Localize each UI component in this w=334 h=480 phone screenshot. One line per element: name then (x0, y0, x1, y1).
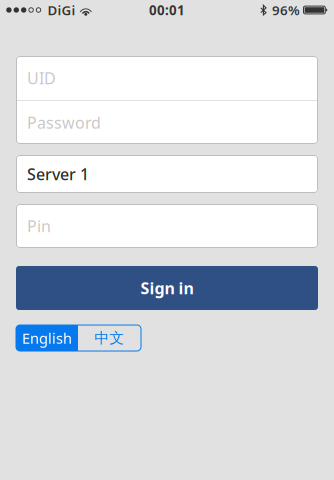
staticText: 96% (272, 1, 300, 19)
button[interactable]: Password (16, 101, 318, 144)
staticText: Password (27, 112, 101, 133)
staticText: Pin (27, 215, 51, 237)
staticText: 00:01 (149, 1, 185, 19)
staticText: English (22, 328, 72, 348)
button[interactable]: UID (16, 56, 318, 100)
staticText: UID (27, 67, 56, 89)
staticText: Server 1 (27, 163, 89, 185)
button[interactable]: English (16, 325, 78, 351)
button[interactable]: 中文 (78, 325, 141, 351)
button[interactable]: Pin (16, 204, 318, 248)
staticText: DiGi (47, 1, 75, 19)
staticText: 中文 (94, 329, 124, 347)
staticText: Sign in (140, 277, 193, 299)
button[interactable]: Sign in (16, 266, 318, 310)
button[interactable]: Server 1 (16, 155, 318, 193)
